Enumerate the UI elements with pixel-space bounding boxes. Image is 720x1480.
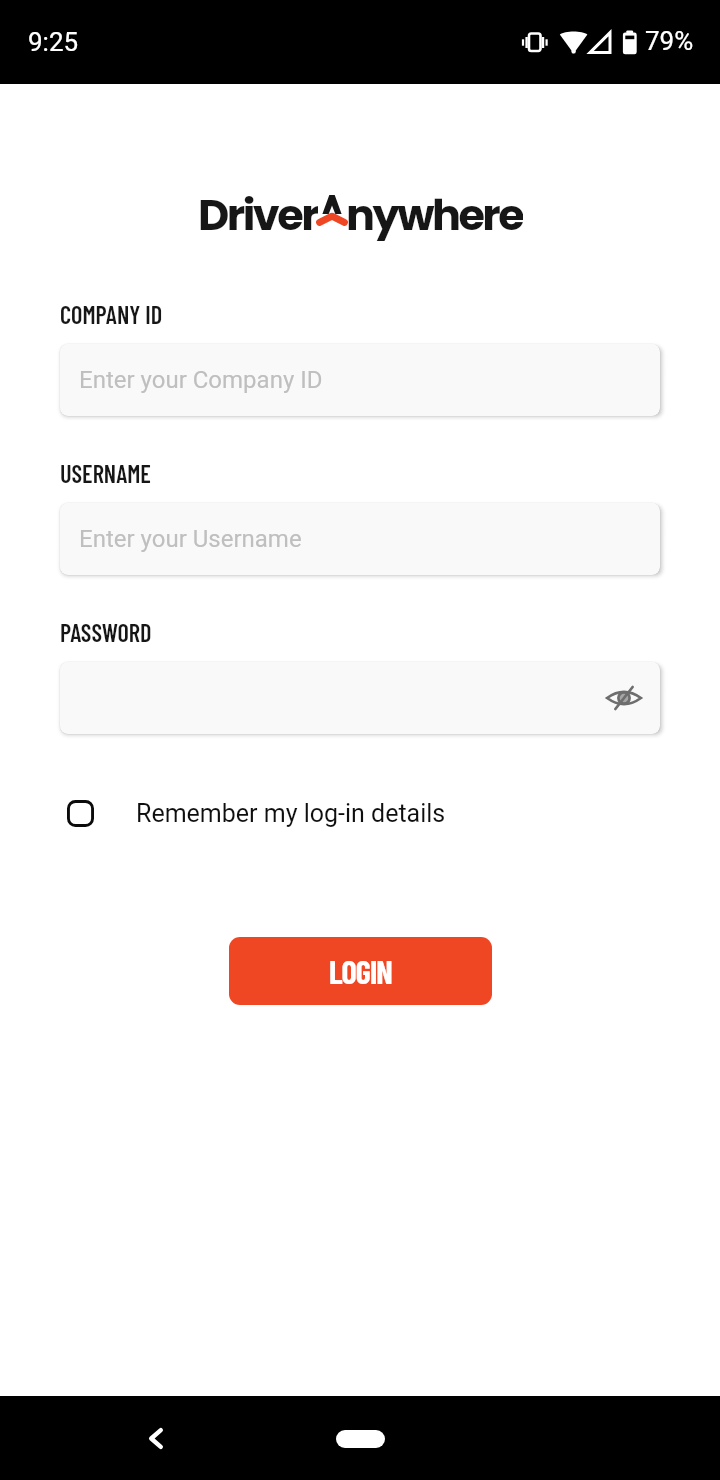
button[interactable]: LOGIN [229, 937, 492, 1005]
staticText: Enter your Company ID [79, 366, 323, 394]
button[interactable]: Remember my log-in details [53, 792, 446, 835]
staticText: USERNAME [60, 459, 151, 488]
staticText: nywhere [346, 185, 523, 241]
button[interactable]: Enter your Company ID [60, 344, 660, 416]
button[interactable]: Back [128, 1410, 184, 1466]
staticText: Driver [198, 185, 318, 241]
staticText: 9:25 [28, 27, 79, 57]
staticText: PASSWORD [60, 618, 152, 647]
button[interactable]: Show password [60, 662, 660, 734]
staticText: Enter your Username [79, 525, 302, 553]
staticText: 79% [645, 26, 694, 56]
button[interactable]: Home [336, 1430, 385, 1448]
staticText: COMPANY ID [60, 300, 163, 329]
staticText: LOGIN [329, 952, 392, 990]
button[interactable]: Enter your Username [60, 503, 660, 575]
button[interactable]: Show password [600, 674, 648, 722]
staticText: Remember my log-in details [136, 799, 446, 828]
